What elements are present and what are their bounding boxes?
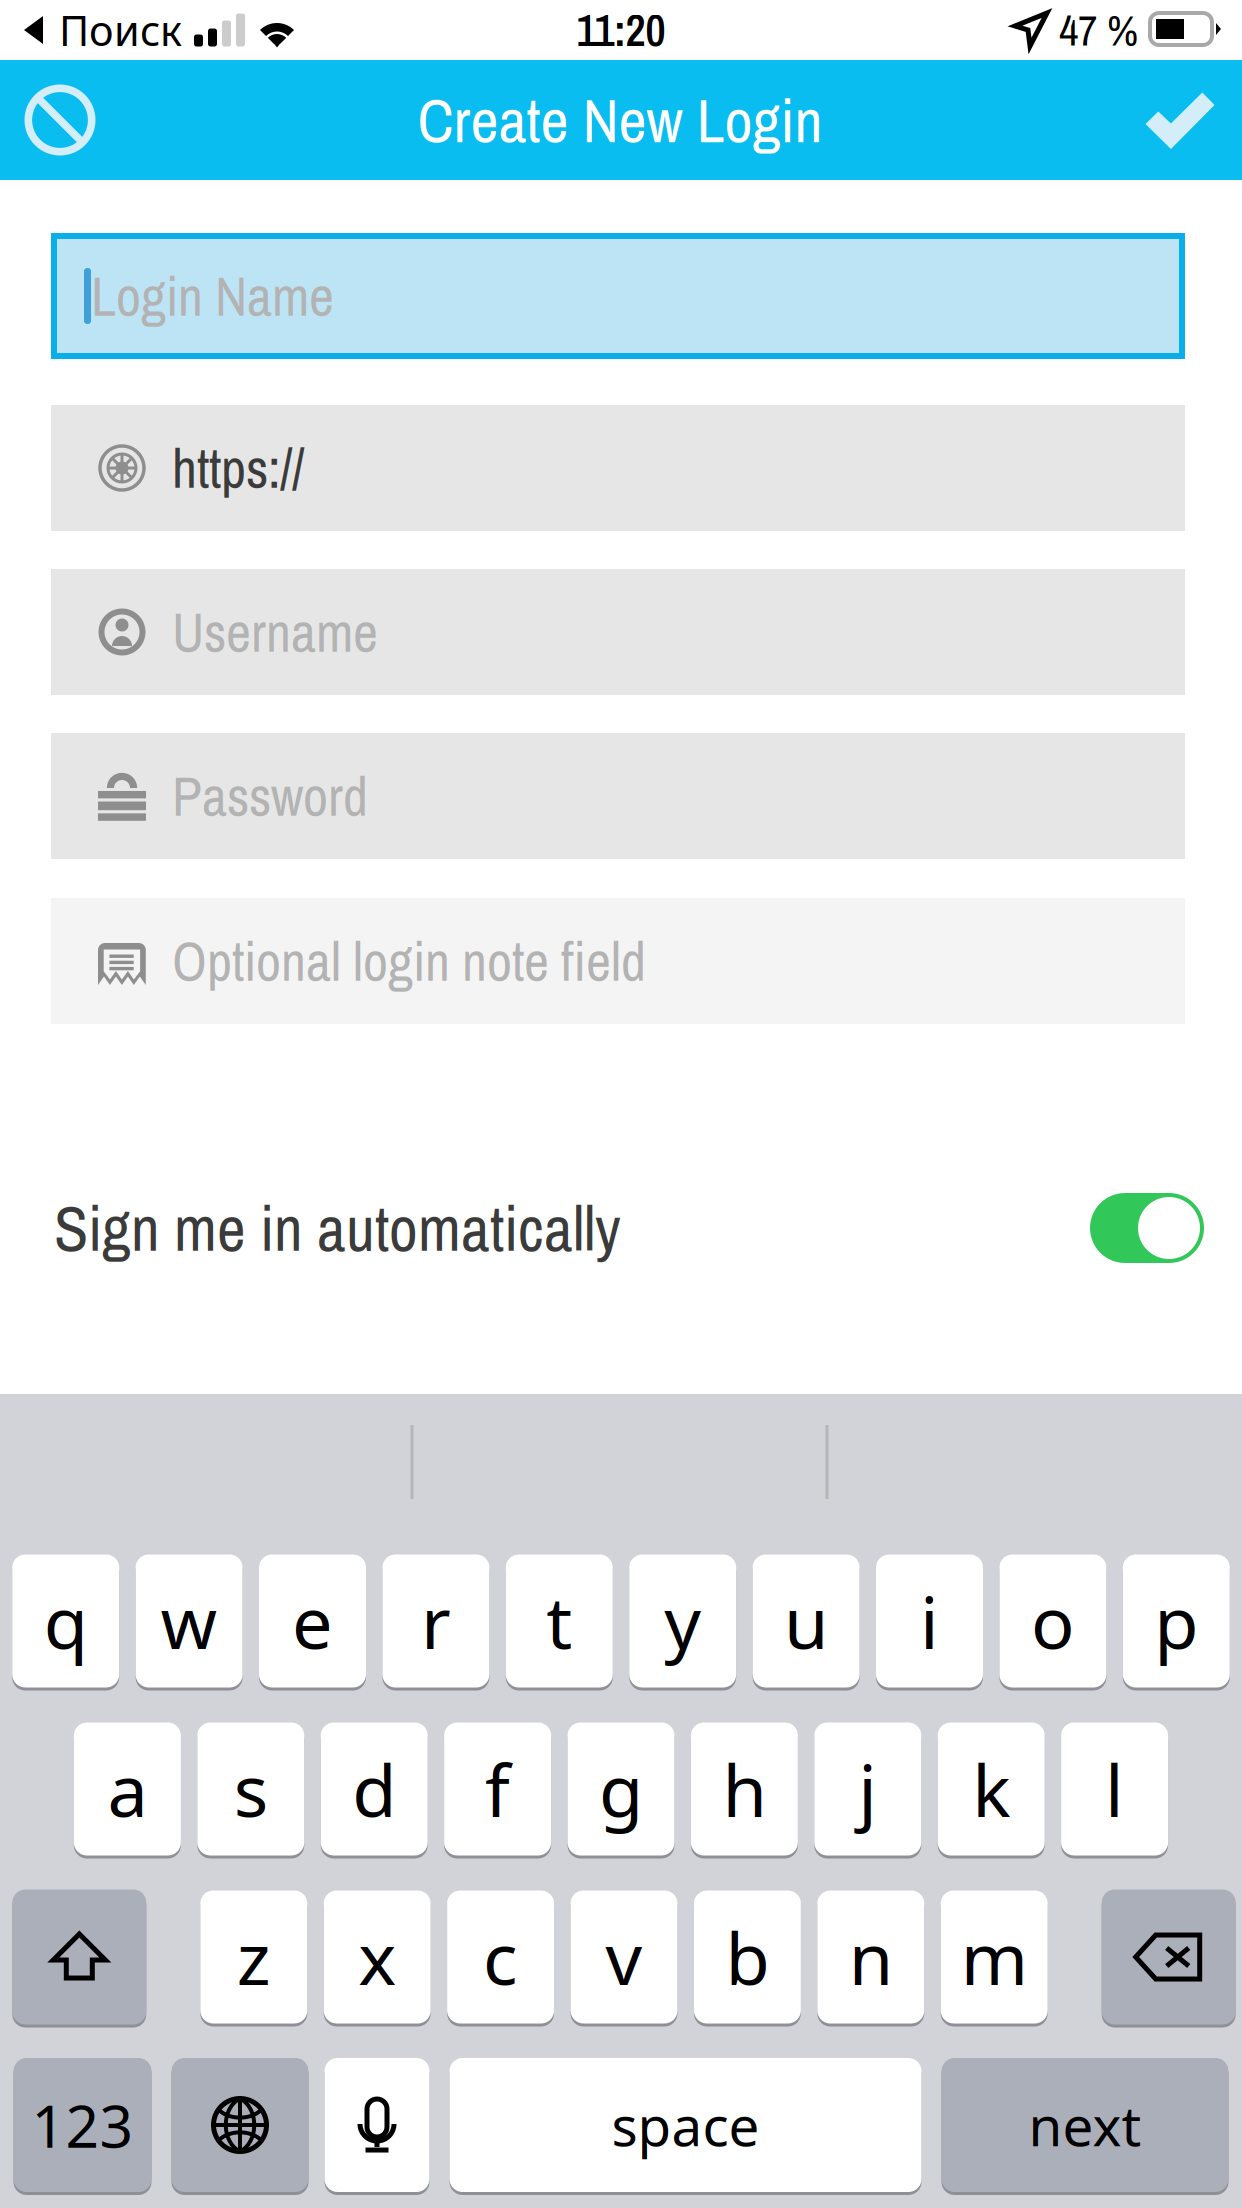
button[interactable]: x	[324, 1887, 431, 2026]
staticText: p	[1154, 1573, 1198, 1669]
button[interactable]: Dictate	[324, 2055, 429, 2195]
button[interactable]: q	[12, 1551, 119, 1690]
staticText: Login Name	[91, 259, 334, 333]
button[interactable]: m	[941, 1887, 1048, 2026]
button[interactable]: h	[691, 1719, 798, 1858]
button[interactable]: p	[1123, 1551, 1230, 1690]
button[interactable]: Cancel	[0, 60, 120, 180]
staticText: c	[483, 1909, 518, 2005]
button[interactable]: 123	[13, 2055, 151, 2195]
staticText: z	[237, 1909, 271, 2005]
button[interactable]: i	[876, 1551, 983, 1690]
button[interactable]: j	[814, 1719, 921, 1858]
button[interactable]: Username	[51, 569, 1185, 695]
button[interactable]: s	[197, 1719, 304, 1858]
staticText: s	[234, 1741, 268, 1837]
button[interactable]: Password	[51, 733, 1185, 859]
staticText: t	[546, 1573, 572, 1669]
staticText: u	[784, 1573, 828, 1669]
staticText: n	[849, 1909, 893, 2005]
button[interactable]: f	[444, 1719, 551, 1858]
button[interactable]: Shift	[12, 1886, 146, 2027]
button[interactable]: b	[694, 1887, 801, 2026]
staticText: j	[858, 1741, 877, 1837]
staticText: next	[1028, 2089, 1141, 2161]
staticText: h	[722, 1741, 766, 1837]
button[interactable]: space	[449, 2055, 921, 2195]
staticText: b	[725, 1909, 769, 2005]
staticText: y	[664, 1573, 701, 1669]
button[interactable]: e	[259, 1551, 366, 1690]
button[interactable]: z	[200, 1887, 307, 2026]
staticText: x	[358, 1909, 396, 2005]
staticText: Поиск	[59, 2, 182, 58]
button[interactable]: y	[629, 1551, 736, 1690]
button[interactable]: o	[999, 1551, 1106, 1690]
staticText: f	[485, 1741, 510, 1837]
button[interactable]: c	[447, 1887, 554, 2026]
button[interactable]: r	[382, 1551, 489, 1690]
button[interactable]: w	[136, 1551, 243, 1690]
staticText: Sign me in automatically	[54, 1186, 621, 1270]
staticText: e	[292, 1573, 333, 1669]
staticText: w	[161, 1573, 218, 1669]
staticText: 11:20	[576, 0, 665, 60]
button[interactable]: Next keyboard	[171, 2055, 308, 2195]
staticText: g	[599, 1741, 643, 1837]
button[interactable]: t	[506, 1551, 613, 1690]
staticText: r	[421, 1573, 451, 1669]
staticText: m	[961, 1909, 1028, 2005]
staticText: o	[1031, 1573, 1075, 1669]
staticText: a	[107, 1741, 147, 1837]
staticText: i	[920, 1573, 939, 1669]
button[interactable]: v	[570, 1887, 677, 2026]
staticText: https://	[172, 431, 304, 505]
staticText: Create New Login	[417, 79, 822, 161]
staticText: 47 %	[1059, 1, 1138, 59]
button[interactable]: Login Name	[51, 233, 1185, 359]
staticText: Username	[172, 595, 378, 669]
staticText: space	[611, 2089, 759, 2161]
staticText: k	[972, 1741, 1010, 1837]
staticText: l	[1105, 1741, 1124, 1837]
staticText: 123	[31, 2086, 133, 2164]
button[interactable]: l	[1061, 1719, 1168, 1858]
staticText: d	[352, 1741, 396, 1837]
staticText: q	[44, 1573, 88, 1669]
button[interactable]: Sign me in automatically	[0, 1168, 1242, 1288]
button[interactable]: u	[753, 1551, 860, 1690]
button[interactable]: k	[938, 1719, 1045, 1858]
button[interactable]: Backspace	[1102, 1886, 1236, 2027]
button[interactable]: a	[74, 1719, 181, 1858]
button[interactable]: Optional login note field	[51, 898, 1185, 1024]
button[interactable]: Save	[1121, 61, 1239, 181]
button[interactable]: https://	[51, 405, 1185, 531]
button[interactable]: n	[817, 1887, 924, 2026]
staticText: Optional login note field	[172, 924, 646, 998]
button[interactable]: d	[321, 1719, 428, 1858]
button[interactable]: next	[941, 2055, 1228, 2195]
staticText: v	[605, 1909, 642, 2005]
button[interactable]: g	[567, 1719, 674, 1858]
staticText: Password	[172, 759, 368, 833]
